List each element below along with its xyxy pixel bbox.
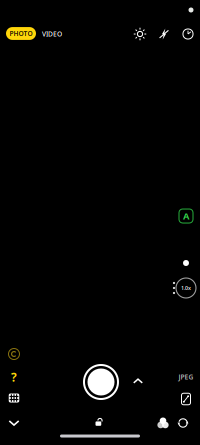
button[interactable]: VIDEO <box>38 27 66 41</box>
button[interactable]: Switch camera <box>177 417 189 429</box>
button[interactable]: Night mode <box>8 370 20 384</box>
staticText: A <box>183 210 189 222</box>
button[interactable]: JPEG <box>174 372 198 382</box>
button[interactable]: Lock <box>95 416 103 426</box>
button[interactable]: Hide controls <box>8 420 19 426</box>
button[interactable]: Photographic Styles <box>8 348 19 359</box>
button[interactable]: Flash off <box>157 27 170 40</box>
button[interactable]: Exposure <box>133 27 146 40</box>
staticText: VIDEO <box>42 30 62 38</box>
button[interactable]: Filters <box>157 417 168 428</box>
button[interactable]: Zoom 1.0x <box>176 278 196 298</box>
button[interactable]: Photo format <box>181 393 190 405</box>
button[interactable]: Timer <box>182 28 194 40</box>
staticText: 1.0x <box>181 284 191 292</box>
button[interactable]: Auto <box>179 209 193 223</box>
staticText: JPEG <box>178 373 193 381</box>
button[interactable]: PHOTO <box>6 27 36 40</box>
button[interactable]: Styles <box>9 393 19 402</box>
button[interactable]: Show controls <box>133 378 143 384</box>
staticText: PHOTO <box>9 29 32 38</box>
button[interactable]: Take photo <box>84 365 118 399</box>
staticText: ? <box>11 369 17 385</box>
